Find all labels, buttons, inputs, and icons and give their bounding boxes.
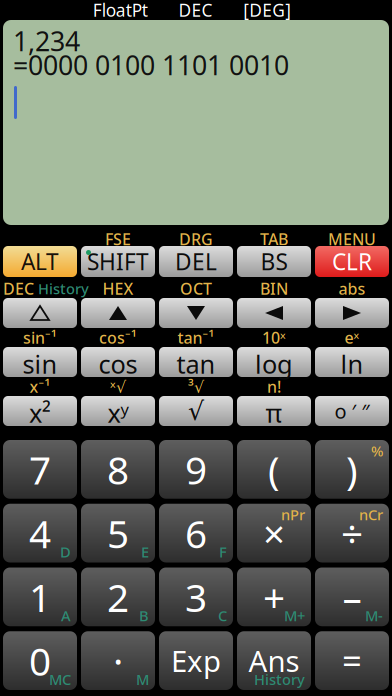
button[interactable]: ALT (3, 246, 77, 277)
staticText: o ′ ″ (334, 398, 369, 424)
button[interactable]: – (315, 567, 389, 626)
staticText: tan⁻¹ (177, 327, 214, 348)
staticText: C (218, 606, 227, 625)
staticText: 4 (29, 507, 51, 559)
staticText: · (113, 635, 123, 686)
staticText: DEC (178, 0, 212, 21)
staticText: B (139, 606, 149, 625)
staticText: sin (22, 347, 57, 377)
button[interactable]: Up (3, 298, 77, 328)
staticText: ÷ (341, 507, 363, 559)
button[interactable]: Exp (159, 631, 233, 690)
button[interactable]: sin (3, 347, 77, 377)
button[interactable]: x² (3, 396, 77, 426)
staticText: ( (268, 444, 280, 495)
staticText: CLR (332, 246, 372, 276)
staticText: ln (340, 347, 363, 377)
staticText: BS (260, 246, 287, 276)
staticText: Ans (248, 641, 299, 680)
button[interactable]: BS (237, 246, 311, 277)
staticText: 10ˣ (262, 327, 286, 348)
button[interactable]: 2 (81, 567, 155, 626)
button[interactable]: · (81, 631, 155, 690)
button[interactable]: 4 (3, 504, 77, 563)
staticText: =0000 0100 1101 0010 (13, 47, 289, 83)
staticText: MC (49, 669, 71, 689)
staticText: eˣ (344, 327, 359, 348)
staticText: History (38, 279, 89, 298)
staticText: 0 (29, 635, 51, 686)
staticText: A (61, 606, 71, 625)
button[interactable]: CLR (315, 246, 389, 277)
button[interactable]: cos (81, 347, 155, 377)
staticText: ³√ (188, 376, 204, 397)
button[interactable]: 9 (159, 440, 233, 499)
staticText: 8 (107, 444, 129, 495)
staticText: 7 (29, 444, 51, 495)
button[interactable]: 5 (81, 504, 155, 563)
staticText: % (371, 441, 383, 460)
button[interactable]: 8 (81, 440, 155, 499)
button[interactable]: Up (81, 298, 155, 328)
staticText: nCr (359, 505, 383, 524)
button[interactable]: xʸ (81, 396, 155, 426)
staticText: F (219, 542, 227, 561)
staticText: 6 (185, 507, 207, 559)
staticText: Exp (171, 641, 221, 680)
staticText: BIN (260, 278, 288, 299)
staticText: x⁻¹ (29, 376, 50, 397)
staticText: 3 (185, 571, 207, 622)
button[interactable]: Right (315, 298, 389, 328)
button[interactable]: + (237, 567, 311, 626)
staticText: – (342, 571, 361, 622)
staticText: + (263, 571, 285, 622)
staticText: M+ (284, 606, 305, 625)
staticText: M- (365, 606, 383, 625)
button[interactable]: = (315, 631, 389, 690)
button[interactable]: 6 (159, 504, 233, 563)
staticText: sin⁻¹ (23, 327, 57, 348)
staticText: OCT (180, 278, 212, 299)
button[interactable]: × (237, 504, 311, 563)
button[interactable]: ÷ (315, 504, 389, 563)
staticText: tan (176, 347, 215, 377)
button[interactable]: Ans (237, 631, 311, 690)
button[interactable]: tan (159, 347, 233, 377)
staticText (38, 228, 42, 250)
staticText: 9 (185, 444, 207, 495)
button[interactable]: Down (159, 298, 233, 328)
button[interactable]: 7 (3, 440, 77, 499)
staticText: MENU (328, 228, 376, 250)
staticText (350, 376, 354, 397)
staticText: DRG (179, 228, 213, 250)
button[interactable]: 3 (159, 567, 233, 626)
staticText: log (255, 347, 293, 377)
button[interactable]: 1 (3, 567, 77, 626)
staticText: D (60, 542, 71, 561)
staticText: = (342, 638, 362, 684)
staticText: nPr (281, 505, 305, 524)
staticText: 5 (107, 507, 129, 559)
button[interactable]: SHIFT (81, 246, 155, 277)
staticText: [DEG] (243, 0, 291, 21)
button[interactable]: o ′ ″ (315, 396, 389, 426)
button[interactable]: DEL (159, 246, 233, 277)
button[interactable]: √ (159, 396, 233, 426)
staticText: xʸ (107, 396, 128, 426)
button[interactable]: log (237, 347, 311, 377)
staticText: abs (338, 278, 365, 299)
staticText: 1 (29, 571, 51, 622)
button[interactable]: 0 (3, 631, 77, 690)
staticText: ) (346, 444, 358, 495)
staticText: cos (98, 347, 137, 377)
staticText: √ (188, 397, 204, 425)
staticText: HEX (102, 278, 133, 299)
button[interactable]: ) (315, 440, 389, 499)
staticText: 1,234 (13, 23, 80, 59)
button[interactable]: Left (237, 298, 311, 328)
button[interactable]: π (237, 396, 311, 426)
button[interactable]: ln (315, 347, 389, 377)
staticText: E (141, 542, 149, 561)
staticText: ˣ√ (110, 376, 126, 397)
button[interactable]: ( (237, 440, 311, 499)
